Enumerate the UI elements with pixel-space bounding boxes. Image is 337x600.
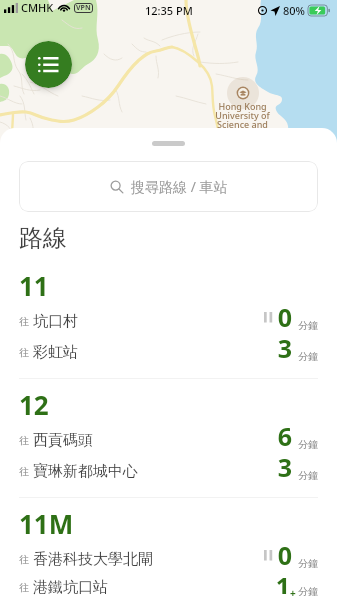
button[interactable]: 11M xyxy=(0,498,337,600)
staticText: 搜尋路線 / 車站 xyxy=(131,177,228,196)
staticText: 分鐘 xyxy=(298,350,318,363)
staticText: 香港科技大學北閘 xyxy=(33,550,153,569)
staticText: 分鐘 xyxy=(298,557,318,570)
button[interactable]: 11 xyxy=(0,260,337,378)
staticText: 往 xyxy=(19,465,29,478)
staticText: 6 xyxy=(277,419,292,450)
button[interactable]: Route list xyxy=(25,41,72,88)
staticText: 往 xyxy=(19,581,29,594)
button[interactable]: 搜尋路線 / 車站 xyxy=(19,161,318,212)
staticText: 12:35 PM xyxy=(145,3,193,18)
staticText: 3 xyxy=(277,331,292,362)
staticText: + xyxy=(290,586,296,600)
staticText: 0 xyxy=(277,538,292,569)
staticText: 往 xyxy=(19,434,29,447)
staticText: 彩虹站 xyxy=(33,343,78,362)
staticText: VPN xyxy=(76,3,91,13)
staticText: 西貢碼頭 xyxy=(33,431,93,450)
staticText: 3 xyxy=(277,450,292,481)
staticText: 11M xyxy=(19,506,74,541)
staticText: 0 xyxy=(277,300,292,331)
staticText: 11 xyxy=(19,268,49,303)
staticText: 分鐘 xyxy=(298,585,318,598)
staticText: Technology xyxy=(217,127,267,139)
staticText: Science and xyxy=(217,118,268,130)
staticText: 寶琳新都城中心 xyxy=(33,462,138,481)
staticText: 路線 xyxy=(19,223,67,253)
staticText: 12 xyxy=(19,387,49,422)
staticText: 80% xyxy=(283,3,305,18)
staticText: 分鐘 xyxy=(298,469,318,482)
staticText: CMHK xyxy=(21,0,54,15)
staticText: 往 xyxy=(19,346,29,359)
staticText: 分鐘 xyxy=(298,438,318,451)
staticText: 港鐵坑口站 xyxy=(33,578,108,597)
staticText: 分鐘 xyxy=(298,319,318,332)
staticText: 坑口村 xyxy=(33,312,78,331)
button[interactable]: 12 xyxy=(0,379,337,497)
staticText: Hong Kong xyxy=(218,100,267,112)
staticText: 往 xyxy=(19,315,29,328)
staticText: University of xyxy=(215,109,270,121)
staticText: 1 xyxy=(275,569,290,594)
staticText: 往 xyxy=(19,553,29,566)
